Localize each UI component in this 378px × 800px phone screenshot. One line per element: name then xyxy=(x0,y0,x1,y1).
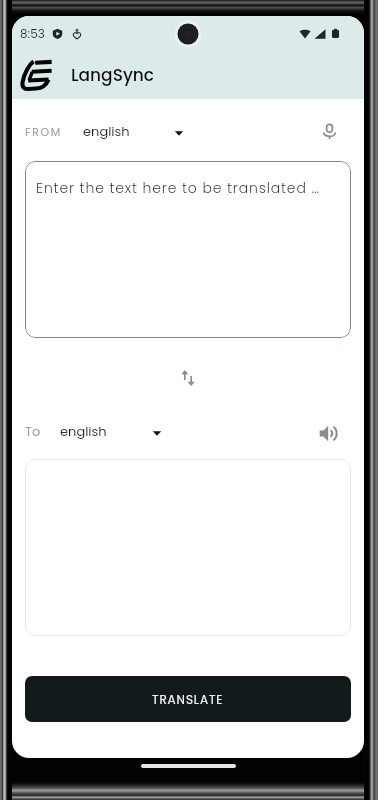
staticText: Enter the text here to be translated … xyxy=(36,178,320,198)
button[interactable]: Enter the text here to be translated … xyxy=(25,161,351,338)
staticText: TRANSLATE xyxy=(152,691,224,708)
button[interactable]: To xyxy=(25,422,162,440)
staticText: english xyxy=(60,422,107,440)
staticText: english xyxy=(83,122,130,140)
button[interactable]: FROM xyxy=(25,122,184,140)
button[interactable]: Voice input xyxy=(312,114,346,148)
button[interactable] xyxy=(25,459,351,636)
staticText: LangSync xyxy=(71,63,155,87)
staticText: 8:53 xyxy=(20,25,45,42)
button[interactable]: Speak translation xyxy=(310,416,344,450)
staticText: FROM xyxy=(25,124,62,139)
staticText: To xyxy=(25,422,41,440)
button[interactable]: TRANSLATE xyxy=(25,676,351,722)
button[interactable]: Swap languages xyxy=(171,361,205,395)
